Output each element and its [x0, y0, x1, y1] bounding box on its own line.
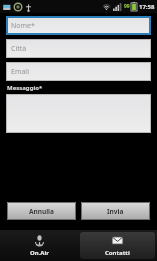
- button[interactable]: [6, 94, 151, 133]
- button[interactable]: Città: [6, 39, 151, 58]
- staticText: Messaggio*: [7, 84, 43, 92]
- staticText: Contatti: [105, 249, 130, 257]
- staticText: On.Air: [30, 249, 49, 257]
- button[interactable]: Invia: [81, 202, 150, 220]
- button[interactable]: Nome*: [6, 16, 151, 35]
- button[interactable]: Email: [6, 62, 151, 81]
- staticText: Email: [11, 67, 29, 77]
- button[interactable]: On.Air: [2, 232, 76, 259]
- staticText: Città: [11, 44, 27, 54]
- staticText: Nome*: [11, 21, 35, 31]
- staticText: 99: [124, 3, 130, 10]
- button[interactable]: Annulla: [7, 202, 76, 220]
- button[interactable]: Contatti: [80, 232, 155, 259]
- staticText: 17:58: [139, 3, 155, 11]
- staticText: Invia: [107, 207, 124, 216]
- staticText: Annulla: [29, 207, 54, 216]
